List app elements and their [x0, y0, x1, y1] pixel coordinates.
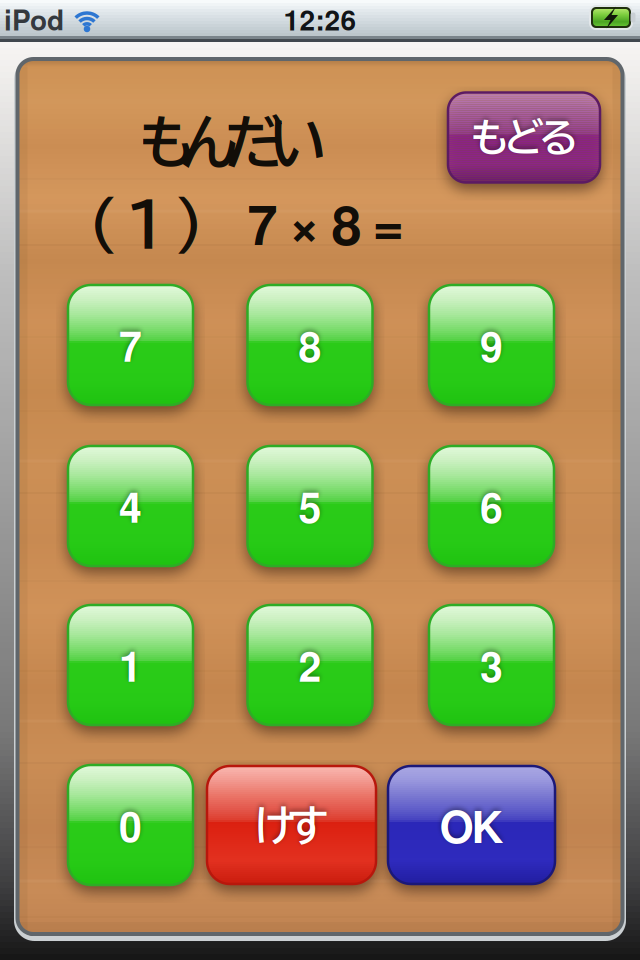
staticText: けす [254, 804, 328, 846]
button[interactable]: 5 [247, 446, 372, 566]
staticText: もんだい [139, 113, 327, 170]
staticText: 12:26 [283, 0, 356, 39]
button[interactable]: 6 [429, 446, 554, 566]
button[interactable]: けす [207, 766, 376, 884]
staticText: OK [439, 793, 503, 856]
staticText: 7 × 8 = [247, 184, 404, 262]
staticText: 7 [119, 316, 142, 374]
button[interactable]: OK [388, 766, 555, 884]
button[interactable]: 3 [429, 605, 554, 725]
staticText: 2 [298, 636, 321, 694]
staticText: 3 [480, 636, 503, 694]
button[interactable]: 8 [247, 285, 372, 405]
button[interactable]: 2 [247, 605, 372, 725]
button[interactable]: 0 [68, 765, 193, 885]
staticText: 8 [298, 316, 321, 374]
button[interactable]: 7 [68, 285, 193, 405]
staticText: （1） [88, 195, 204, 255]
staticText: 6 [480, 477, 503, 535]
staticText: 0 [119, 796, 142, 854]
button[interactable]: 4 [68, 446, 193, 566]
staticText: 4 [119, 477, 142, 535]
button[interactable]: 1 [68, 605, 193, 725]
staticText: 1 [119, 636, 142, 694]
staticText: iPod [4, 0, 64, 39]
button[interactable]: もどる [448, 92, 600, 182]
staticText: もどる [470, 118, 577, 157]
button[interactable]: 9 [429, 285, 554, 405]
staticText: 9 [480, 316, 503, 374]
staticText: 5 [298, 477, 321, 535]
